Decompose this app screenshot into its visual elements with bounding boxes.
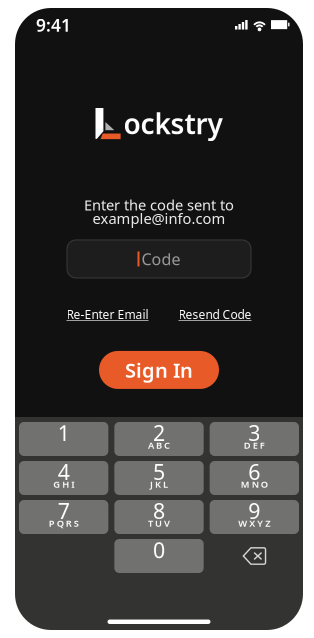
staticText: J K L bbox=[150, 478, 168, 490]
button[interactable]: 5 bbox=[114, 461, 204, 495]
button[interactable]: Delete bbox=[210, 539, 299, 573]
button[interactable]: 2 bbox=[114, 422, 204, 456]
staticText: G H I bbox=[53, 478, 74, 490]
staticText: 9 bbox=[248, 497, 260, 525]
button[interactable]: 0 bbox=[114, 539, 204, 573]
button[interactable]: 7 bbox=[19, 500, 108, 534]
staticText: 2 bbox=[153, 419, 165, 447]
staticText: 9:41 bbox=[36, 13, 71, 36]
button[interactable]: 8 bbox=[114, 500, 204, 534]
staticText: 6 bbox=[248, 458, 260, 486]
button[interactable]: 6 bbox=[210, 461, 299, 495]
staticText: Sign In bbox=[125, 357, 193, 383]
button[interactable]: 1 bbox=[19, 422, 108, 456]
staticText: 5 bbox=[153, 458, 165, 486]
staticText: P Q R S bbox=[49, 517, 79, 529]
staticText: 3 bbox=[248, 419, 260, 447]
staticText: 1 bbox=[58, 419, 70, 447]
button[interactable]: Code bbox=[67, 240, 251, 278]
button[interactable]: 4 bbox=[19, 461, 108, 495]
button[interactable]: 9 bbox=[210, 500, 299, 534]
staticText: T U V bbox=[148, 517, 170, 529]
staticText: A B C bbox=[148, 439, 170, 451]
staticText: Re-Enter Email bbox=[66, 306, 148, 322]
button[interactable]: 3 bbox=[210, 422, 299, 456]
staticText: 4 bbox=[58, 458, 70, 486]
staticText: Resend Code bbox=[178, 306, 251, 322]
staticText: 7 bbox=[58, 497, 70, 525]
button[interactable]: Resend Code bbox=[178, 306, 251, 322]
staticText: 0 bbox=[153, 536, 165, 564]
staticText: D E F bbox=[244, 439, 265, 451]
staticText: Enter the code sent to bbox=[84, 195, 234, 214]
staticText: ockstry bbox=[123, 105, 222, 142]
staticText: W X Y Z bbox=[238, 517, 270, 529]
staticText: M N O bbox=[241, 478, 268, 490]
button[interactable]: Sign In bbox=[99, 351, 219, 389]
staticText: Code bbox=[141, 248, 180, 269]
staticText: example@info.com bbox=[92, 208, 225, 228]
staticText: 8 bbox=[153, 497, 165, 525]
button[interactable]: Re-Enter Email bbox=[66, 306, 148, 322]
